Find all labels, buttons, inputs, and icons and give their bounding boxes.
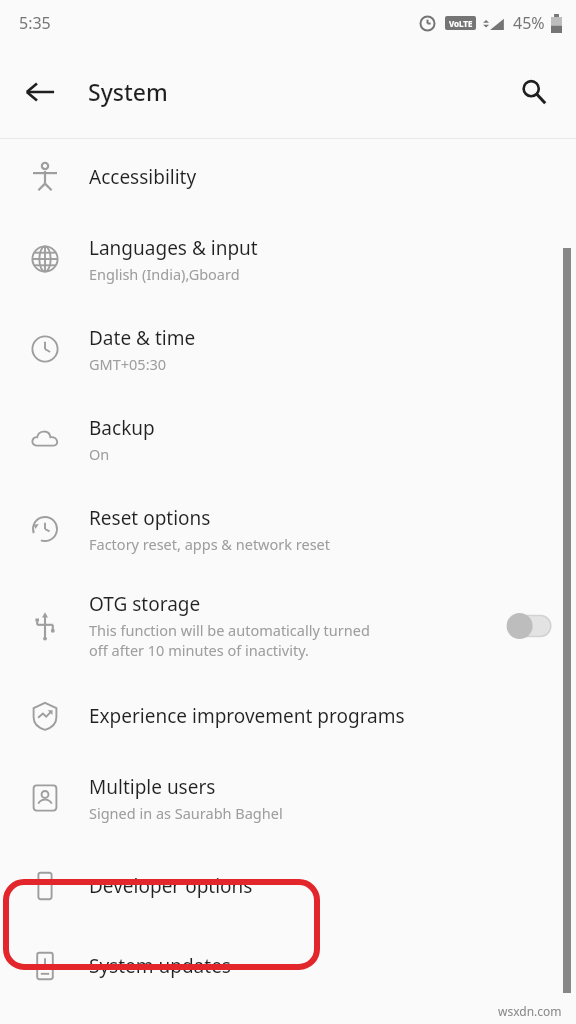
staticText: Multiple users [89, 774, 216, 800]
staticText: Signed in as Saurabh Baghel [89, 803, 283, 823]
button[interactable]: Accessibility [0, 139, 576, 214]
button[interactable]: Languages & input [0, 214, 576, 304]
button[interactable]: Backup [0, 394, 576, 484]
staticText: Reset options [89, 505, 211, 531]
staticText: wsxdn.com [498, 1003, 562, 1019]
button[interactable]: System updates [0, 931, 576, 1001]
staticText: GMT+05:30 [89, 354, 167, 374]
staticText: VoLTE [449, 18, 473, 29]
staticText: Experience improvement programs [89, 703, 405, 729]
staticText: Date & time [89, 325, 196, 351]
staticText: OTG storage [89, 591, 201, 617]
button[interactable]: OTG storage [0, 574, 576, 677]
button[interactable]: OTG storage toggle [484, 574, 576, 677]
button[interactable]: Search [507, 65, 561, 119]
staticText: System [88, 76, 168, 107]
button[interactable]: Reset options [0, 484, 576, 574]
button[interactable]: Experience improvement programs [0, 677, 576, 755]
staticText: Backup [89, 415, 155, 441]
staticText: On [89, 444, 110, 464]
button[interactable]: Back [12, 64, 68, 120]
staticText: Factory reset, apps & network reset [89, 534, 331, 554]
button[interactable]: Multiple users [0, 755, 576, 841]
staticText: System updates [89, 953, 231, 979]
staticText: English (India),Gboard [89, 264, 240, 284]
staticText: 5:35 [19, 12, 51, 34]
staticText: Languages & input [89, 235, 258, 261]
staticText: 45% [513, 12, 545, 34]
staticText: Developer options [89, 873, 253, 899]
staticText: Accessibility [89, 164, 197, 190]
button[interactable]: Developer options [0, 841, 576, 931]
staticText: This function will be automatically turn… [89, 620, 370, 660]
button[interactable]: Date & time [0, 304, 576, 394]
